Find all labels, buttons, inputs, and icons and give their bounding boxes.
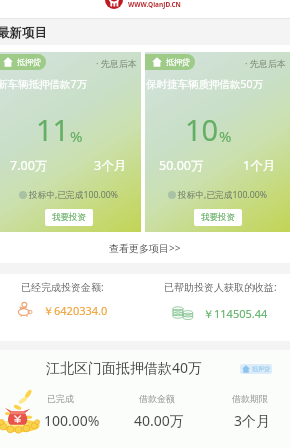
staticText: 投标中,已完成100.00% [29,189,118,201]
staticText: 40.00万 [134,411,184,430]
button[interactable]: 江北区门面抵押借款40万 [0,350,290,448]
staticText: 最新项目 [0,25,47,41]
staticText: 保时捷车辆质押借款50万 [146,77,264,91]
button[interactable]: 抵押贷 [0,52,141,232]
staticText: · 先息后本 [245,57,286,69]
button[interactable]: 我要投资 [45,209,93,226]
staticText: 1个月 [243,157,276,174]
button[interactable]: 我要投资 [194,209,242,226]
staticText: 抵押贷 [252,365,270,373]
staticText: 已完成 [47,393,74,404]
staticText: ￥6420334.0 [43,303,108,318]
staticText: 新车辆抵押借款7万 [0,77,88,91]
staticText: 抵押贷 [166,57,190,67]
staticText: 抵押贷 [17,57,41,67]
staticText: 50.00万 [159,157,204,174]
staticText: 我要投资 [201,212,235,223]
staticText: 江北区门面抵押借款40万 [46,358,203,377]
staticText: % [70,126,83,146]
other: Logo [105,0,123,9]
staticText: 已经完成投资金额: [21,280,104,294]
staticText: 已帮助投资人获取的收益: [164,280,277,294]
staticText: 借款金额 [139,393,175,404]
staticText: ￥114505.44 [203,306,268,321]
staticText: WWW.QianJD.CN [128,0,181,9]
staticText: 投标中,已完成100.00% [178,189,267,201]
staticText: % [219,126,232,146]
staticText: 100.00% [44,411,100,430]
staticText: 7.00万 [10,157,48,174]
button[interactable]: 查看更多项目>> [0,232,290,263]
staticText: 3个月 [234,411,271,430]
staticText: 11 [36,110,70,149]
staticText: 查看更多项目>> [109,241,181,255]
staticText: · 先息后本 [96,57,137,69]
staticText: 3个月 [94,157,127,174]
staticText: 借款期限 [232,393,268,404]
staticText: 10 [185,110,219,149]
button[interactable]: 抵押贷 [145,52,290,232]
staticText: 我要投资 [52,212,86,223]
